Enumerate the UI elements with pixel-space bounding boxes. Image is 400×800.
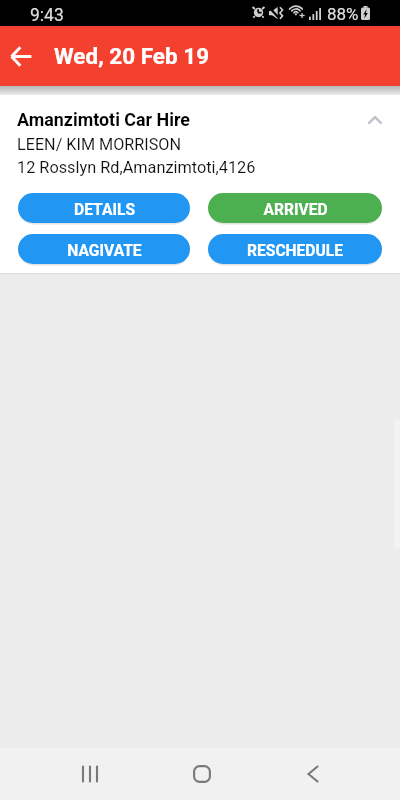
staticText: Wed, 20 Feb 19 bbox=[54, 43, 210, 69]
staticText: Amanzimtoti Car Hire bbox=[17, 109, 191, 130]
staticText: DETAILS bbox=[74, 201, 135, 219]
button[interactable]: Recent apps bbox=[66, 750, 114, 798]
button[interactable]: Collapse bbox=[360, 105, 390, 135]
button[interactable]: Back bbox=[4, 39, 38, 73]
button[interactable]: RESCHEDULE bbox=[208, 234, 382, 264]
staticText: 9:43 bbox=[30, 5, 64, 26]
staticText: RESCHEDULE bbox=[247, 242, 343, 260]
staticText: LEEN/ KIM MORRISON bbox=[17, 135, 181, 154]
staticText: NAGIVATE bbox=[67, 242, 142, 260]
button[interactable]: Home bbox=[178, 750, 226, 798]
button[interactable]: DETAILS bbox=[18, 193, 190, 223]
button[interactable]: NAGIVATE bbox=[18, 234, 190, 264]
staticText: 12 Rosslyn Rd,Amanzimtoti,4126 bbox=[17, 158, 256, 177]
button[interactable]: ARRIVED bbox=[208, 193, 382, 223]
staticText: ARRIVED bbox=[263, 201, 328, 219]
staticText: 88% bbox=[327, 4, 359, 24]
button[interactable]: Back bbox=[289, 750, 337, 798]
button[interactable] bbox=[0, 100, 400, 180]
